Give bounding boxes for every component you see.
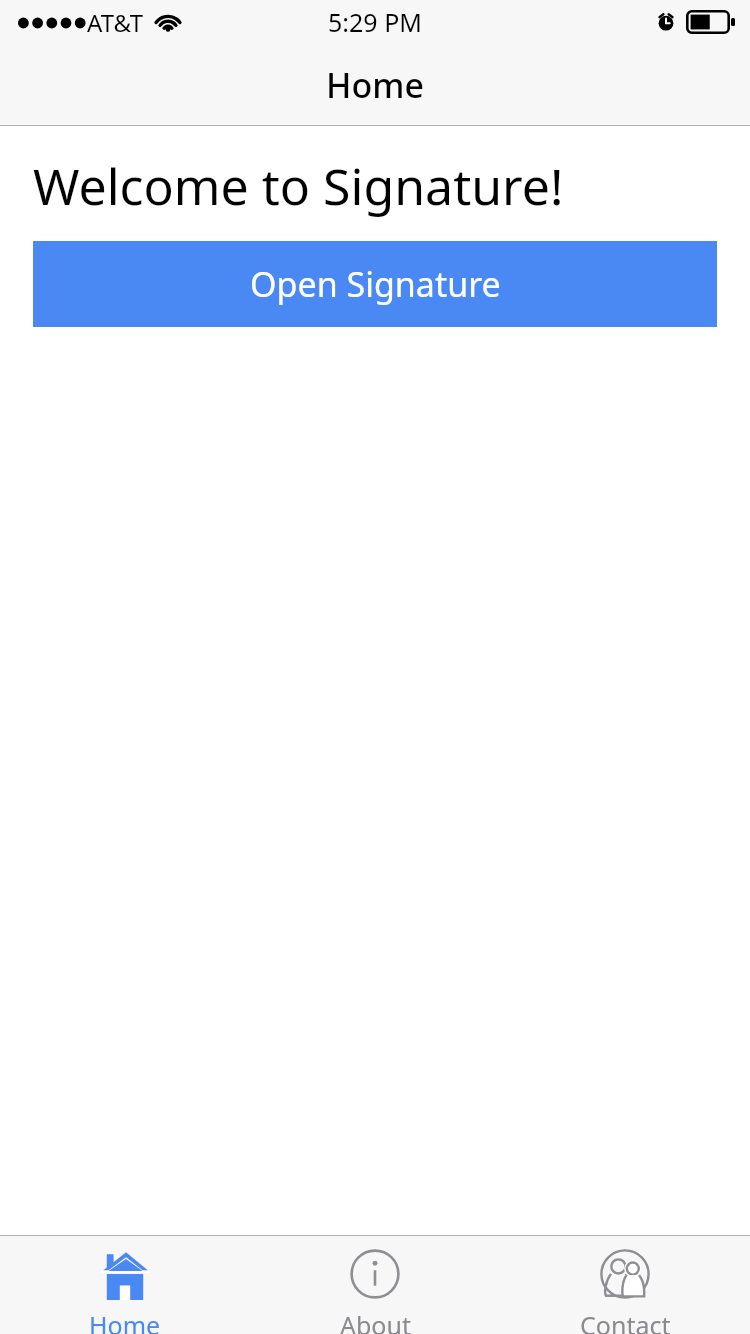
staticText: About	[340, 1308, 411, 1334]
button[interactable]: Open Signature	[33, 241, 717, 327]
staticText: AT&T	[87, 6, 143, 39]
other: About	[349, 1248, 401, 1300]
button[interactable]: Contact	[500, 1236, 750, 1334]
staticText: Open Signature	[250, 261, 501, 307]
staticText: Home	[89, 1308, 161, 1334]
staticText: 5:29 PM	[328, 5, 422, 39]
button[interactable]: About	[250, 1236, 500, 1334]
other: Home	[99, 1248, 151, 1300]
other: Contact	[599, 1248, 651, 1300]
staticText: Home	[326, 62, 424, 108]
staticText: Contact	[580, 1308, 671, 1334]
staticText: Welcome to Signature!	[33, 152, 564, 220]
button[interactable]: Home	[0, 1236, 250, 1334]
